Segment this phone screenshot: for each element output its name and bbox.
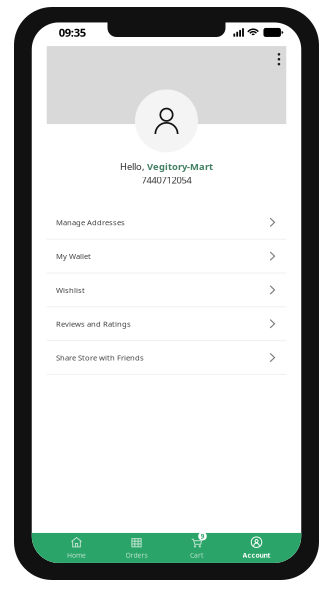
staticText: Wishlist <box>56 285 85 295</box>
button[interactable]: More options <box>272 46 286 71</box>
button[interactable]: My Wallet <box>32 240 301 274</box>
button[interactable]: Orders <box>106 533 166 563</box>
staticText: Account <box>242 550 270 560</box>
staticText: Orders <box>125 550 147 560</box>
staticText: 9 <box>200 532 204 541</box>
staticText: Cart <box>190 550 203 560</box>
staticText: Reviews and Ratings <box>56 319 131 329</box>
staticText: Hello, <box>120 160 147 173</box>
staticText: Share Store with Friends <box>56 352 144 363</box>
button[interactable]: Home <box>46 533 106 563</box>
staticText: 7440712054 <box>141 174 191 186</box>
staticText: 09:35 <box>59 25 86 40</box>
button[interactable]: Share Store with Friends <box>32 341 301 375</box>
button[interactable]: 9 <box>166 533 226 563</box>
button[interactable]: Wishlist <box>32 273 301 307</box>
button[interactable]: Manage Addresses <box>32 206 301 240</box>
staticText: Home <box>67 550 86 560</box>
staticText: Manage Addresses <box>56 217 125 228</box>
button[interactable]: Reviews and Ratings <box>32 307 301 341</box>
staticText: Vegitory-Mart <box>147 160 213 173</box>
button[interactable]: Account <box>226 533 286 563</box>
staticText: My Wallet <box>56 251 91 261</box>
